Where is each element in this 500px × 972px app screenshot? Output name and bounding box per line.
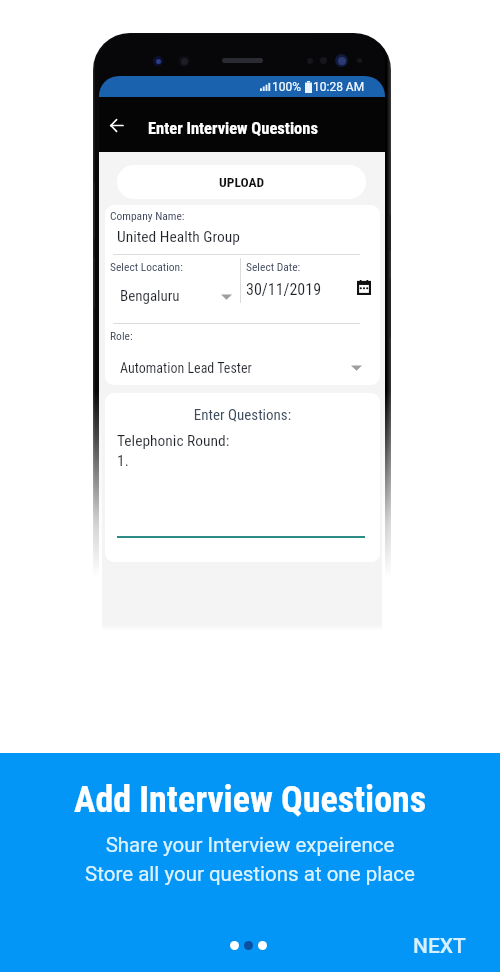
button[interactable]: NEXT [405, 928, 474, 965]
staticText: Select Location: [110, 260, 183, 273]
staticText: 1. [117, 452, 129, 470]
staticText: Company Name: [110, 209, 185, 222]
staticText: Select Date: [246, 260, 301, 273]
staticText: 10:28 AM [313, 80, 365, 94]
staticText: Role: [110, 329, 133, 342]
button[interactable]: Back [105, 116, 127, 134]
staticText: Enter Questions: [105, 406, 380, 424]
staticText: Share your Interview expeirence Store al… [0, 833, 500, 886]
staticText: Automation Lead Tester [120, 360, 252, 376]
staticText: Enter Interview Questions [148, 119, 318, 138]
staticText: Bengaluru [120, 287, 180, 305]
button[interactable]: Pick date [354, 276, 374, 298]
staticText: 100% [272, 80, 302, 94]
staticText: Telephonic Round: [117, 432, 230, 450]
staticText: NEXT [413, 934, 466, 959]
staticText: UPLOAD [219, 174, 265, 190]
staticText: 30/11/2019 [246, 280, 322, 299]
button[interactable]: Page 1 [230, 941, 239, 950]
staticText: United Health Group [117, 228, 241, 246]
button[interactable]: Automation Lead Tester [105, 356, 380, 380]
button[interactable]: Page 3 [258, 941, 267, 950]
button[interactable]: Select location [215, 289, 237, 305]
staticText: Add Interview Questions [0, 779, 500, 821]
button[interactable]: UPLOAD [117, 165, 366, 199]
button[interactable]: Page 2 [244, 941, 253, 950]
